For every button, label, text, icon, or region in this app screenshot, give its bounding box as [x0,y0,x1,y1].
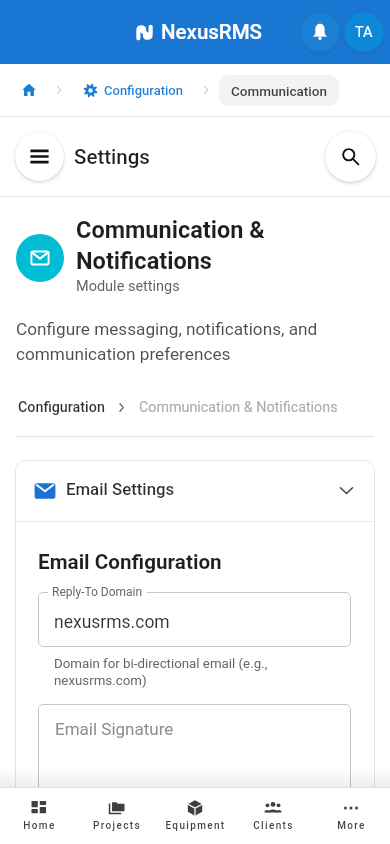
staticText: Domain for bi-directional email (e.g., n… [54,656,268,688]
button[interactable]: Clients [234,788,312,844]
button[interactable]: Email Signature [38,704,351,824]
staticText: Configure messaging, notifications, and … [16,319,318,364]
button[interactable]: Configuration [18,399,105,416]
button[interactable]: Email Settings [15,460,375,521]
button[interactable]: Home [21,82,37,98]
staticText: Home [23,820,56,832]
staticText: Configuration [104,83,183,98]
staticText: Email Signature [55,719,174,739]
staticText: More [337,820,366,832]
staticText: Reply-To Domain [52,585,143,599]
staticText: Settings [74,145,150,169]
staticText: TA [355,24,373,41]
staticText: Clients [253,820,294,832]
button[interactable]: Equipment [156,788,234,844]
staticText: Communication [231,83,327,99]
button[interactable]: Home [0,788,78,844]
staticText: Equipment [165,820,226,832]
button[interactable]: nexusrms.com [38,592,351,647]
staticText: nexusrms.com [54,612,170,633]
staticText: Communication & Notifications [139,399,338,416]
button[interactable]: Search [325,131,376,182]
staticText: Communication & Notifications [76,216,265,275]
staticText: NexusRMS [161,20,262,44]
button[interactable]: Communication [219,75,339,106]
button[interactable]: Menu [15,132,64,181]
button[interactable]: Configuration [83,83,183,98]
button[interactable]: More [312,788,390,844]
staticText: Projects [93,820,141,832]
staticText: Email Configuration [38,550,222,574]
staticText: Module settings [76,278,180,295]
button[interactable]: Account [344,12,384,52]
button[interactable]: Projects [78,788,156,844]
staticText: Email Settings [66,479,175,499]
button[interactable]: Notifications [300,12,340,52]
